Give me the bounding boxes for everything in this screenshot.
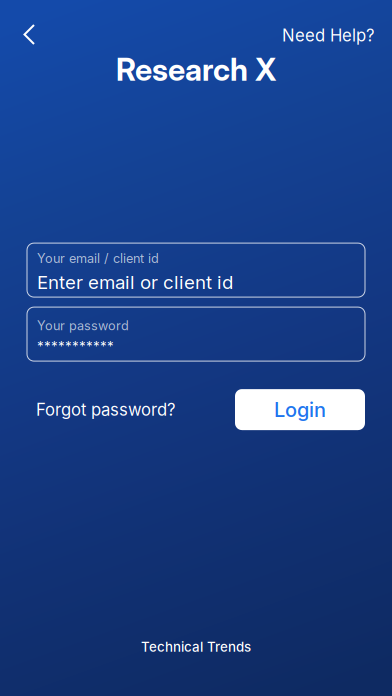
staticText: Need Help? (282, 25, 375, 46)
staticText: *********** (37, 338, 114, 354)
staticText: Your password (37, 318, 129, 333)
staticText: Enter email or client id (37, 271, 233, 294)
staticText: Forgot password? (36, 399, 176, 420)
staticText: Technical Trends (141, 639, 251, 655)
staticText: Your email / client id (37, 251, 159, 266)
button[interactable]: Need Help? (268, 13, 392, 50)
button[interactable]: Back (0, 13, 49, 50)
staticText: Research X (116, 51, 276, 88)
staticText: Login (274, 397, 326, 422)
button[interactable]: Forgot password? (36, 389, 176, 430)
button[interactable]: Login (235, 389, 365, 430)
